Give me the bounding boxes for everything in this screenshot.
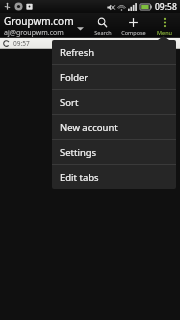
staticText: Menu (157, 29, 172, 36)
staticText: New account (60, 121, 118, 134)
staticText: Folder (60, 71, 89, 84)
staticText: 09:58 (155, 1, 177, 13)
staticText: Refresh (60, 46, 95, 59)
button[interactable]: Groupwm.com (0, 14, 87, 38)
button[interactable]: New account (52, 115, 176, 139)
staticText: Settings (60, 146, 97, 159)
staticText: Edit tabs (60, 171, 99, 184)
staticText: Compose (121, 29, 146, 36)
staticText: Groupwm.com (4, 14, 74, 28)
staticText: Search (94, 29, 112, 36)
button[interactable]: Sort (52, 90, 176, 114)
button[interactable]: Edit tabs (52, 165, 176, 189)
button[interactable]: Settings (52, 140, 176, 164)
button[interactable]: Compose (118, 13, 149, 38)
button[interactable]: Folder (52, 65, 176, 89)
button[interactable]: Search (87, 13, 118, 38)
button[interactable]: Menu (149, 13, 180, 38)
button[interactable]: Refresh (52, 40, 176, 64)
staticText: No mail (74, 83, 107, 95)
staticText: 09:57 (13, 39, 30, 48)
staticText: aj@groupwm.com (4, 28, 64, 38)
staticText: Sort (60, 96, 79, 109)
